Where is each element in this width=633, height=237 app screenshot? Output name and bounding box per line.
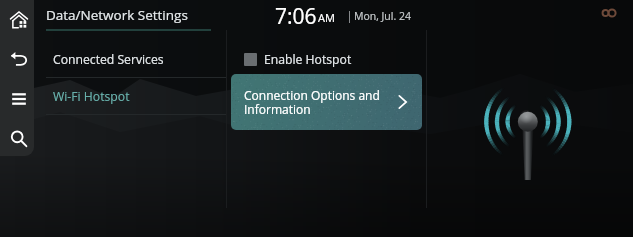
staticText: Mon, Jul. 24 [354, 9, 412, 23]
staticText: AM [318, 10, 335, 25]
staticText: 7:06 [275, 2, 317, 31]
button[interactable]: Search [0, 119, 34, 158]
staticText: Connected Services [53, 51, 164, 68]
button[interactable]: Home [0, 0, 34, 39]
staticText: Wi-Fi Hotspot [53, 88, 130, 105]
staticText: Connection Options and Information [244, 87, 380, 118]
button[interactable]: Back [0, 38, 34, 77]
button[interactable]: Menu [0, 79, 34, 118]
button[interactable]: Connection Options and Information [231, 74, 422, 130]
button[interactable]: Enable Hotspot [244, 47, 352, 71]
staticText: Enable Hotspot [264, 51, 352, 68]
staticText: Data/Network Settings [46, 6, 188, 24]
button[interactable]: Wi-Fi Hotspot [34, 78, 226, 114]
button[interactable]: Connected Services [34, 41, 226, 77]
